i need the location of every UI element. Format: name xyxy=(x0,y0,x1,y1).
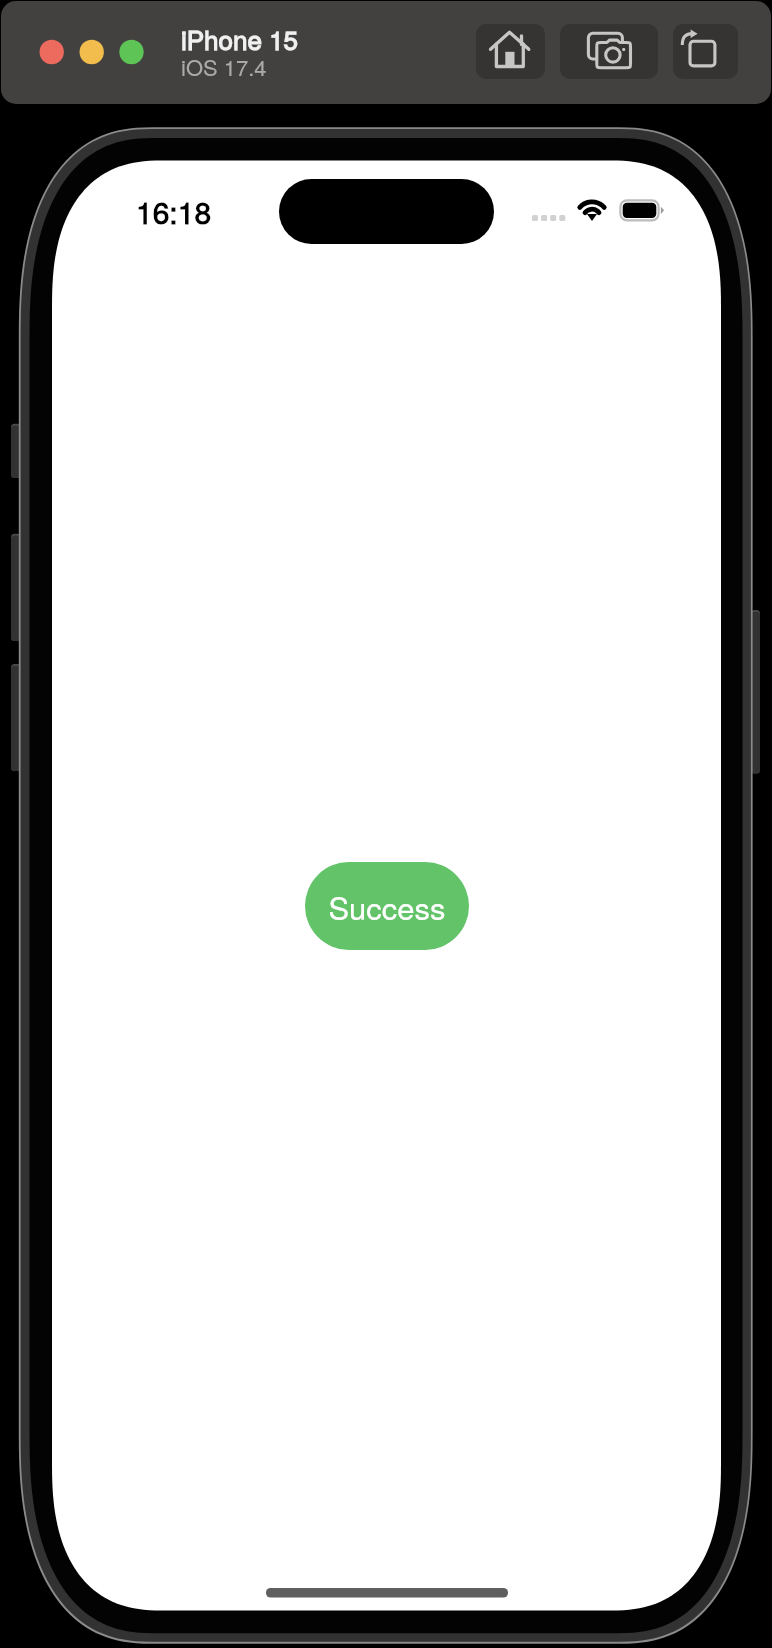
staticText: iPhone 15 xyxy=(181,20,299,57)
staticText: 16:18 xyxy=(136,190,212,233)
button[interactable]: Home xyxy=(476,24,545,79)
button[interactable]: Success xyxy=(305,862,469,950)
button[interactable]: Screenshot xyxy=(560,24,658,79)
staticText: Success xyxy=(328,884,446,928)
button[interactable]: Rotate xyxy=(673,24,738,79)
staticText: iOS 17.4 xyxy=(181,51,267,83)
